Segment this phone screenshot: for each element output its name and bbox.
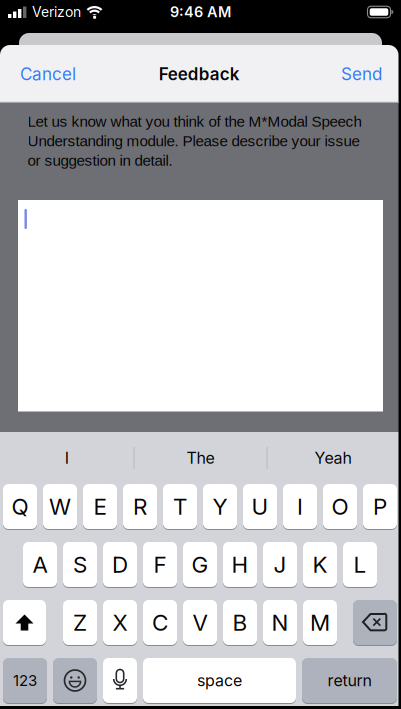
staticText: Send	[341, 64, 382, 84]
staticText: I	[65, 448, 69, 468]
button[interactable]: X	[103, 600, 137, 645]
button[interactable]: O	[323, 484, 357, 529]
button[interactable]: V	[183, 600, 217, 645]
staticText: H	[231, 551, 248, 578]
button[interactable]	[53, 658, 97, 703]
staticText: Yeah	[314, 448, 351, 468]
button[interactable]: H	[223, 542, 257, 587]
staticText: G	[191, 551, 208, 578]
button[interactable]: I	[283, 484, 317, 529]
staticText: The	[186, 448, 214, 468]
button[interactable]: Send	[341, 64, 398, 84]
button[interactable]: S	[63, 542, 97, 587]
button[interactable]: I	[0, 432, 133, 484]
button[interactable]: E	[83, 484, 117, 529]
staticText: 123	[13, 671, 37, 689]
button[interactable]: P	[363, 484, 397, 529]
button[interactable]: 123	[3, 658, 47, 703]
staticText: I	[297, 493, 303, 520]
staticText: Let us know what you think of the M*Moda…	[27, 113, 361, 130]
button[interactable]	[353, 600, 397, 645]
staticText: O	[331, 493, 348, 520]
button[interactable]: N	[263, 600, 297, 645]
button[interactable]: R	[123, 484, 157, 529]
button[interactable]: G	[183, 542, 217, 587]
button[interactable]: Y	[203, 484, 237, 529]
staticText: M	[310, 609, 330, 636]
staticText: Y	[212, 493, 227, 520]
staticText: D	[112, 551, 128, 578]
staticText: Q	[11, 493, 28, 520]
button[interactable]: M	[303, 600, 337, 645]
button[interactable]: return	[302, 658, 397, 703]
staticText: or suggestion in detail.	[27, 152, 172, 169]
staticText: Cancel	[20, 64, 76, 84]
button[interactable]: T	[163, 484, 197, 529]
button[interactable]: U	[243, 484, 277, 529]
button[interactable]: A	[23, 542, 57, 587]
staticText: C	[152, 609, 168, 636]
button[interactable]: W	[43, 484, 77, 529]
staticText: Feedback	[159, 64, 240, 84]
staticText: Verizon	[32, 3, 81, 20]
button[interactable]	[18, 200, 383, 411]
staticText: J	[273, 551, 286, 578]
staticText: R	[133, 493, 147, 520]
button[interactable]: Cancel	[0, 64, 76, 84]
staticText: P	[373, 493, 387, 520]
staticText: 9:46 AM	[170, 3, 231, 21]
button[interactable]: The	[134, 432, 266, 484]
staticText: W	[49, 493, 71, 520]
button[interactable]: Z	[63, 600, 97, 645]
staticText: B	[232, 609, 247, 636]
staticText: A	[32, 551, 47, 578]
staticText: Z	[73, 609, 87, 636]
staticText: K	[312, 551, 327, 578]
staticText: T	[173, 493, 187, 520]
staticText: L	[353, 551, 366, 578]
staticText: F	[153, 551, 166, 578]
button[interactable]: B	[223, 600, 257, 645]
staticText: U	[251, 493, 268, 520]
button[interactable]: F	[143, 542, 177, 587]
staticText: return	[327, 671, 371, 690]
button[interactable]: Yeah	[267, 432, 398, 484]
button[interactable]: K	[303, 542, 337, 587]
button[interactable]	[103, 658, 137, 703]
button[interactable]: L	[343, 542, 377, 587]
staticText: E	[93, 493, 106, 520]
staticText: Understanding module. Please describe yo…	[27, 132, 359, 149]
staticText: space	[197, 671, 242, 690]
staticText: V	[192, 609, 207, 636]
staticText: X	[112, 609, 127, 636]
button[interactable]	[3, 600, 46, 645]
button[interactable]: Q	[3, 484, 37, 529]
button[interactable]: D	[103, 542, 137, 587]
staticText: S	[73, 551, 87, 578]
button[interactable]: space	[143, 658, 296, 703]
button[interactable]: J	[263, 542, 297, 587]
staticText: N	[271, 609, 288, 636]
button[interactable]: C	[143, 600, 177, 645]
